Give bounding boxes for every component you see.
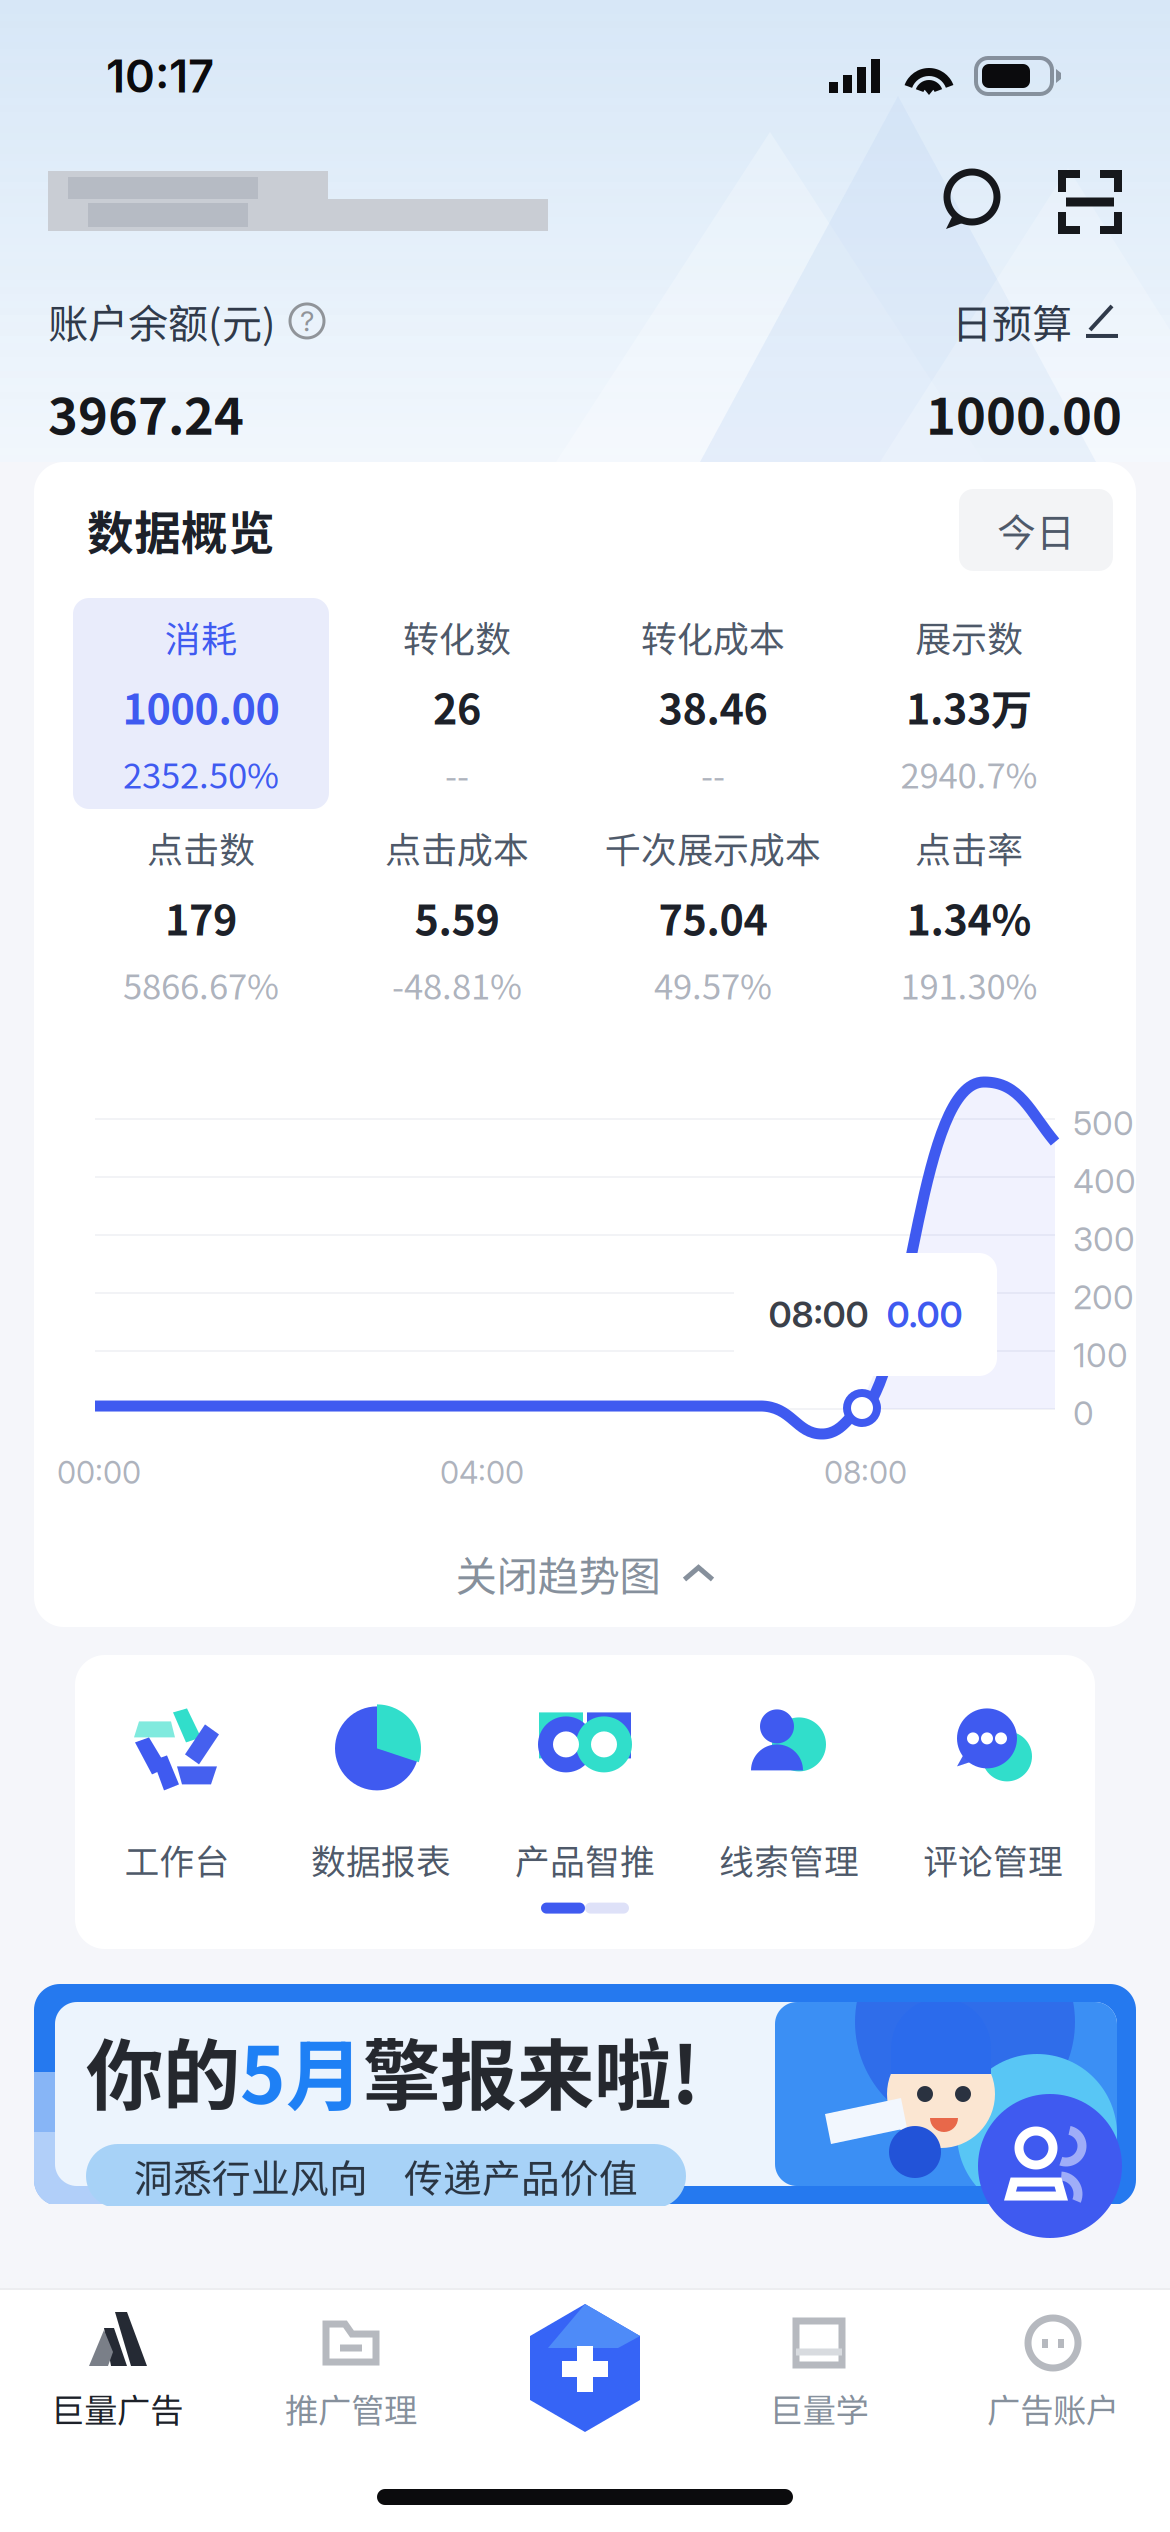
button[interactable]: 评论管理 <box>891 1704 1095 1889</box>
button[interactable]: 展示数 <box>841 598 1097 809</box>
button[interactable]: 产品智推 <box>483 1704 687 1889</box>
staticText: 今日 <box>997 502 1075 558</box>
staticText: 300 <box>1073 1219 1135 1259</box>
button[interactable]: 点击率 <box>841 809 1097 1020</box>
button[interactable]: 点击成本 <box>329 809 585 1020</box>
button[interactable]: 巨量广告 <box>0 2290 234 2448</box>
staticText: 日预算 <box>952 292 1072 350</box>
button[interactable]: 转化成本 <box>585 598 841 809</box>
staticText: 推广管理 <box>285 2384 417 2432</box>
staticText: 500 <box>1073 1103 1134 1143</box>
staticText: 数据概览 <box>87 496 275 564</box>
staticText: 179 <box>165 887 237 947</box>
staticText: 08:00 <box>768 1293 868 1336</box>
staticText: 26 <box>433 676 481 736</box>
staticText: 100 <box>1073 1335 1128 1375</box>
staticText: 2940.7% <box>900 748 1037 799</box>
staticText: 1.33万 <box>906 676 1032 736</box>
staticText: ? <box>300 304 314 338</box>
staticText: 巨量学 <box>769 2384 868 2432</box>
staticText: 点击率 <box>915 821 1023 873</box>
button[interactable]: 线索管理 <box>687 1704 891 1889</box>
staticText: 04:00 <box>440 1454 524 1491</box>
staticText: 广告账户 <box>987 2384 1119 2432</box>
staticText: 评论管理 <box>923 1834 1063 1885</box>
staticText: 1000.00 <box>926 376 1122 449</box>
staticText: 数据报表 <box>311 1834 451 1885</box>
staticText: 1000.00 <box>122 676 279 736</box>
staticText: 线索管理 <box>719 1834 859 1885</box>
staticText: 产品智推 <box>515 1834 655 1885</box>
staticText: -- <box>445 748 469 799</box>
staticText: 转化成本 <box>641 610 785 662</box>
button[interactable]: 新建 <box>468 2290 702 2448</box>
button[interactable]: 今日 <box>959 489 1113 571</box>
staticText: 0.00 <box>886 1293 962 1336</box>
button[interactable]: 广告账户 <box>936 2290 1170 2448</box>
staticText: 5.59 <box>414 887 499 947</box>
staticText: 展示数 <box>915 610 1023 662</box>
button[interactable]: 千次展示成本 <box>585 809 841 1020</box>
staticText: 洞悉行业风向 传递产品价值 <box>134 2148 638 2204</box>
staticText: 2352.50% <box>123 748 279 799</box>
staticText: 千次展示成本 <box>605 821 821 873</box>
button[interactable]: 点击数 <box>73 809 329 1020</box>
button[interactable]: 你的 <box>34 1984 1136 2206</box>
staticText: 5866.67% <box>123 959 279 1010</box>
button[interactable]: 工作台 <box>75 1704 279 1889</box>
staticText: 0 <box>1073 1393 1094 1433</box>
staticText: 你的 <box>86 2014 240 2126</box>
staticText: 消耗 <box>165 610 237 662</box>
staticText: -48.81% <box>392 959 522 1010</box>
button[interactable]: 消耗 <box>73 598 329 809</box>
button[interactable]: 数据报表 <box>279 1704 483 1889</box>
staticText: 5月 <box>240 2014 363 2126</box>
staticText: 1.34% <box>906 887 1031 947</box>
staticText: 擎报来啦! <box>363 2014 700 2126</box>
staticText: 转化数 <box>403 610 511 662</box>
button[interactable]: 广告账户 <box>978 2094 1122 2238</box>
staticText: -- <box>701 748 725 799</box>
button[interactable]: 推广管理 <box>234 2290 468 2448</box>
staticText: 账户余额(元) <box>48 292 276 350</box>
staticText: 点击成本 <box>385 821 529 873</box>
staticText: 75.04 <box>658 887 767 947</box>
button[interactable]: 扫一扫 <box>1058 170 1122 234</box>
staticText: 10:17 <box>106 49 214 103</box>
button[interactable]: 消息 <box>940 169 1006 235</box>
staticText: 巨量广告 <box>51 2384 183 2432</box>
button[interactable]: 巨量学 <box>702 2290 936 2448</box>
staticText: 00:00 <box>57 1454 141 1491</box>
staticText: 工作台 <box>124 1834 229 1885</box>
staticText: 关闭趋势图 <box>455 1544 660 1603</box>
staticText: 400 <box>1073 1161 1136 1201</box>
staticText: 191.30% <box>900 959 1037 1010</box>
button[interactable]: 转化数 <box>329 598 585 809</box>
staticText: 200 <box>1073 1277 1134 1317</box>
staticText: 38.46 <box>658 676 767 736</box>
staticText: 49.57% <box>654 959 772 1010</box>
staticText: 08:00 <box>824 1454 907 1491</box>
button[interactable]: 关闭趋势图 <box>34 1520 1136 1627</box>
staticText: 3967.24 <box>48 376 244 449</box>
staticText: 点击数 <box>147 821 255 873</box>
